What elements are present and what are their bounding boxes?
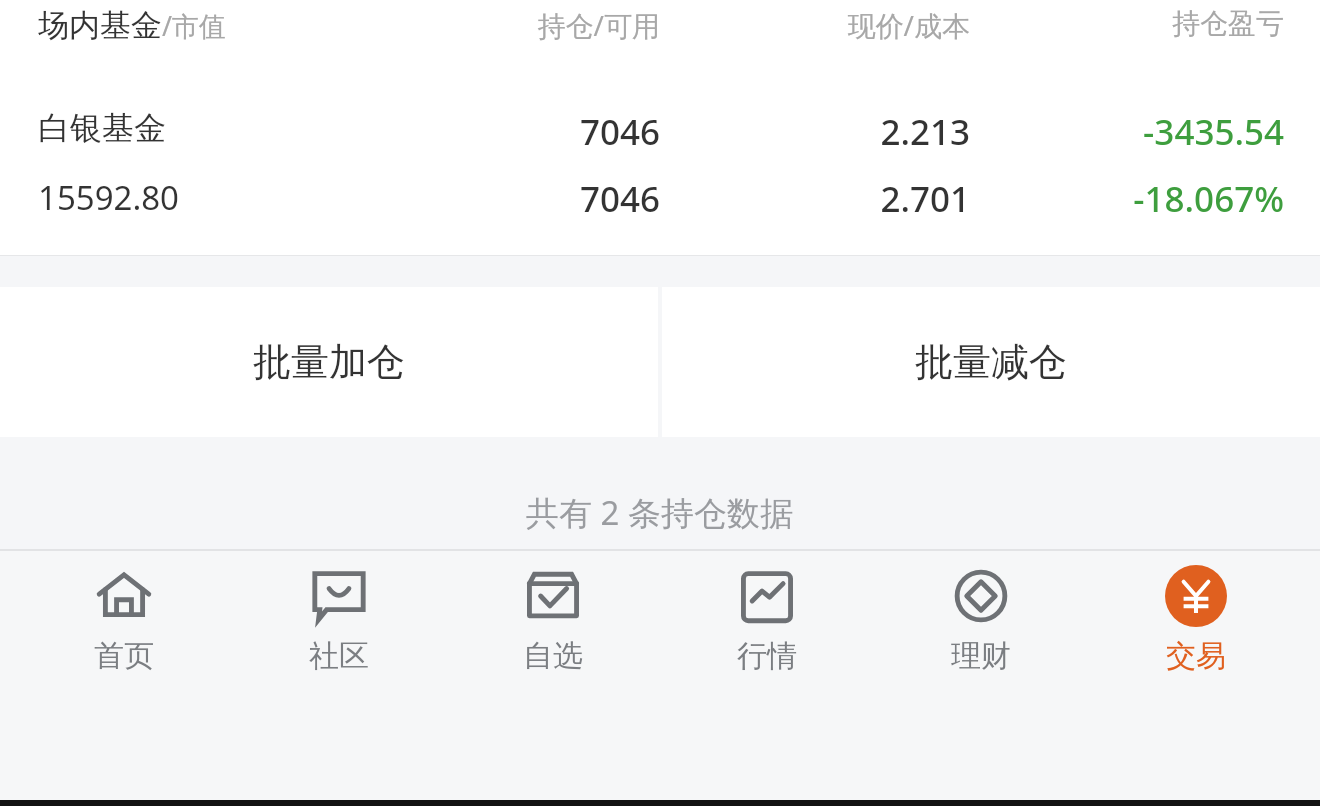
button[interactable]: 交易 [1106, 565, 1286, 675]
button[interactable]: 社区 [249, 565, 429, 675]
staticText: -3435.54 [1143, 108, 1284, 156]
button[interactable]: 自选 [463, 565, 643, 675]
staticText: 7046 [579, 175, 660, 223]
staticText: 现价/成本 [847, 6, 970, 44]
staticText: 行情 [737, 637, 797, 675]
staticText: 社区 [309, 637, 369, 675]
staticText: 场内基金/市值 [38, 6, 227, 45]
staticText: 共有 2 条持仓数据 [526, 490, 794, 535]
staticText: 批量加仓 [253, 338, 405, 386]
staticText: 交易 [1166, 637, 1226, 675]
button[interactable]: 行情 [677, 565, 857, 675]
staticText: 理财 [951, 637, 1011, 675]
button[interactable]: 批量加仓 [0, 287, 658, 437]
button[interactable]: 理财 [891, 565, 1071, 675]
staticText: 2.701 [880, 175, 970, 223]
button[interactable]: 批量减仓 [662, 287, 1320, 437]
staticText: 2.213 [880, 108, 970, 156]
button[interactable]: 白银基金 [0, 108, 1320, 238]
staticText: 15592.80 [38, 175, 179, 220]
staticText: -18.067% [1133, 175, 1284, 223]
staticText: 持仓/可用 [537, 6, 660, 44]
staticText: 持仓盈亏 [1172, 6, 1284, 41]
button[interactable]: 首页 [34, 565, 214, 675]
staticText: 7046 [579, 108, 660, 156]
staticText: 自选 [523, 637, 583, 675]
staticText: 白银基金 [38, 108, 166, 148]
staticText: 首页 [94, 637, 154, 675]
staticText: 批量减仓 [915, 338, 1067, 386]
